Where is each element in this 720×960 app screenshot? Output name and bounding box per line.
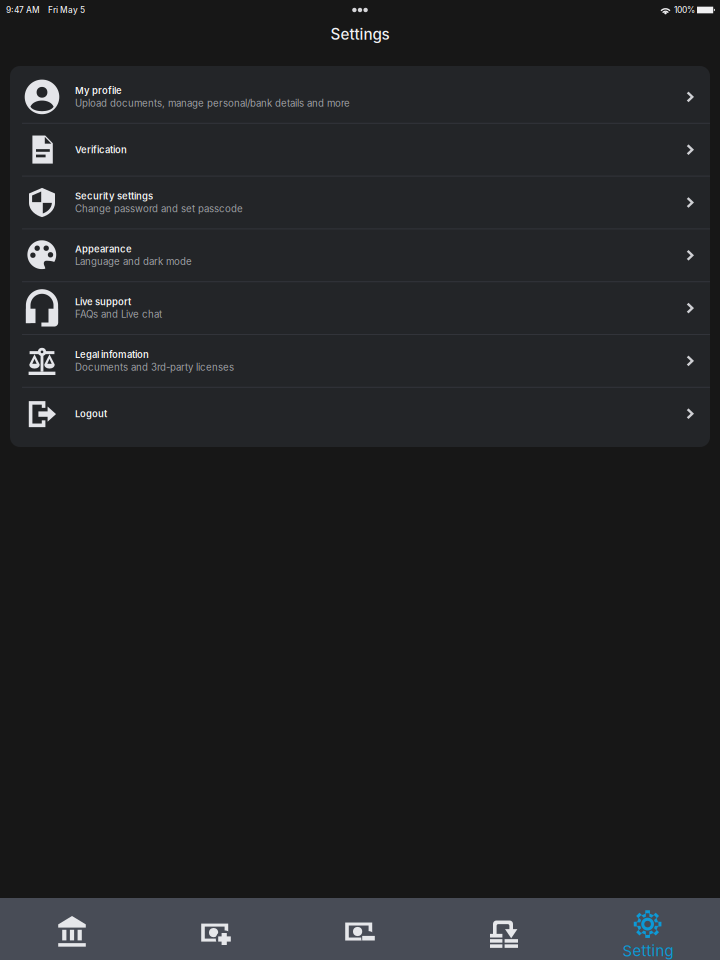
button[interactable]: Deposit bbox=[144, 898, 288, 960]
staticText: Legal infomation bbox=[75, 349, 149, 360]
staticText: 9:47 AM bbox=[6, 5, 40, 15]
staticText: Setting bbox=[622, 942, 673, 960]
button[interactable]: Accounts bbox=[0, 898, 144, 960]
staticText: Change password and set passcode bbox=[75, 203, 243, 215]
button[interactable]: Transfer bbox=[432, 898, 576, 960]
button[interactable]: Security settings bbox=[10, 177, 710, 228]
staticText: Documents and 3rd-party licenses bbox=[75, 361, 234, 373]
staticText: Security settings bbox=[75, 190, 153, 202]
staticText: Live support bbox=[75, 296, 131, 307]
button[interactable]: Setting bbox=[576, 898, 720, 960]
staticText: Appearance bbox=[75, 243, 132, 255]
staticText: 100% bbox=[674, 5, 695, 15]
button[interactable]: Logout bbox=[10, 388, 710, 440]
button[interactable]: Verification bbox=[10, 124, 710, 176]
staticText: FAQs and Live chat bbox=[75, 308, 162, 320]
staticText: Settings bbox=[330, 25, 389, 43]
button[interactable]: My profile bbox=[10, 71, 710, 123]
staticText: Logout bbox=[75, 408, 107, 419]
button[interactable]: Live support bbox=[10, 282, 710, 334]
staticText: Upload documents, manage personal/bank d… bbox=[75, 97, 350, 109]
staticText: Fri May 5 bbox=[48, 5, 85, 15]
button[interactable]: Legal infomation bbox=[10, 335, 710, 387]
staticText: Verification bbox=[75, 144, 127, 155]
button[interactable]: Withdraw bbox=[288, 898, 432, 960]
staticText: My profile bbox=[75, 85, 122, 96]
staticText: Language and dark mode bbox=[75, 256, 192, 267]
button[interactable]: Appearance bbox=[10, 229, 710, 281]
